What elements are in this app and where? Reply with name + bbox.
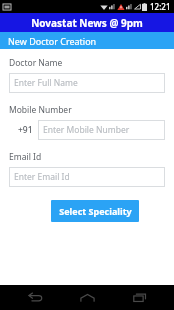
staticText: Enter Email Id <box>14 171 70 183</box>
button[interactable]: Home <box>70 285 104 310</box>
staticText: Enter Mobile Number <box>43 124 130 136</box>
button[interactable]: Enter Full Name <box>9 73 165 93</box>
staticText: Mobile Number <box>9 104 72 116</box>
button[interactable]: Recents <box>122 285 156 310</box>
button[interactable]: Enter Email Id <box>9 167 165 187</box>
button[interactable]: Enter Mobile Number <box>38 120 165 140</box>
button[interactable]: Select Speciality <box>51 200 139 222</box>
staticText: 12:21 <box>150 1 171 12</box>
staticText: Select Speciality <box>59 205 132 217</box>
staticText: New Doctor Creation <box>8 35 97 47</box>
button[interactable]: Back <box>18 285 52 310</box>
button[interactable]: New Doctor Creation <box>0 32 174 49</box>
staticText: Enter Full Name <box>14 77 78 89</box>
staticText: Email Id <box>9 151 42 163</box>
staticText: Doctor Name <box>9 57 63 69</box>
staticText: Novastat News @ 9pm <box>31 16 143 30</box>
staticText: +91 <box>18 124 33 136</box>
